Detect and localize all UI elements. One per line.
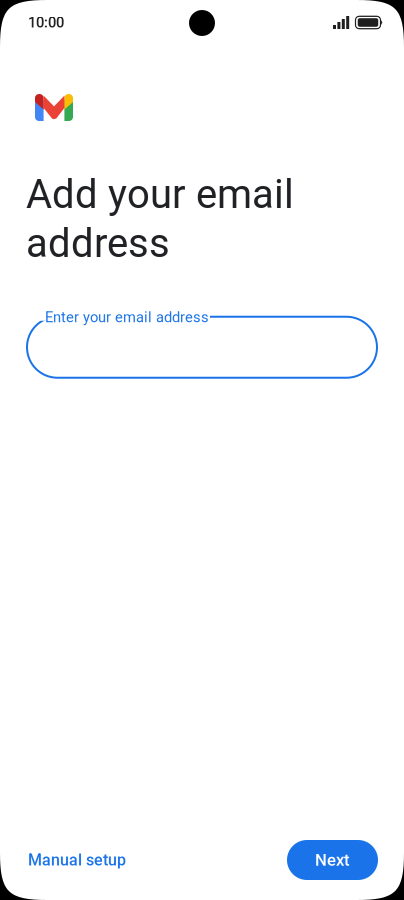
button[interactable]: Manual setup <box>28 851 126 869</box>
staticText: address <box>26 220 170 267</box>
button[interactable]: Next <box>287 840 378 880</box>
staticText: Manual setup <box>28 851 126 869</box>
staticText: 10:00 <box>28 14 64 31</box>
staticText: Add your email <box>26 171 294 218</box>
staticText: Next <box>315 850 350 870</box>
staticText: Enter your email address <box>45 309 209 326</box>
button[interactable]: Enter your email address <box>27 309 377 378</box>
